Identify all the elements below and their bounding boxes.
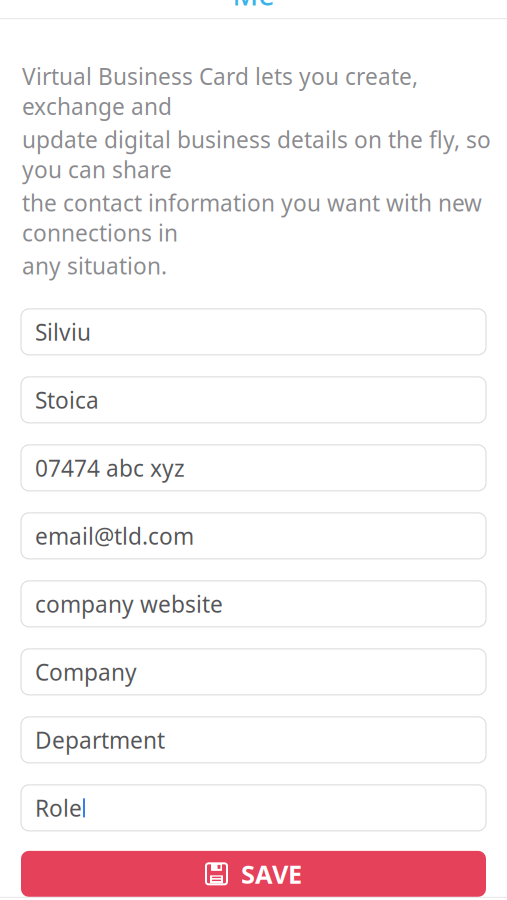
- staticText: any situation.: [22, 251, 167, 281]
- staticText: Me: [232, 0, 274, 13]
- staticText: SAVE: [241, 857, 302, 891]
- staticText: Stoica: [35, 385, 99, 415]
- button[interactable]: SAVE: [21, 851, 486, 897]
- staticText: 07474 abc xyz: [35, 453, 185, 483]
- staticText: email@tld.com: [35, 521, 194, 551]
- staticText: update digital business details on the f…: [22, 124, 491, 184]
- staticText: Company: [35, 657, 137, 687]
- staticText: company website: [35, 589, 223, 619]
- staticText: Department: [35, 725, 165, 755]
- staticText: Silviu: [35, 317, 91, 347]
- staticText: Virtual Business Card lets you create, e…: [22, 61, 418, 121]
- staticText: the contact information you want with ne…: [22, 188, 482, 248]
- staticText: Role: [35, 793, 82, 823]
